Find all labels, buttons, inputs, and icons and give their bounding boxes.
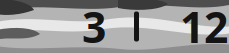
staticText: 3	[82, 0, 106, 53]
button[interactable]: 12	[180, 0, 228, 53]
button[interactable]: Separator	[134, 11, 139, 41]
staticText: 12	[180, 0, 228, 53]
button[interactable]: 3	[82, 0, 106, 53]
